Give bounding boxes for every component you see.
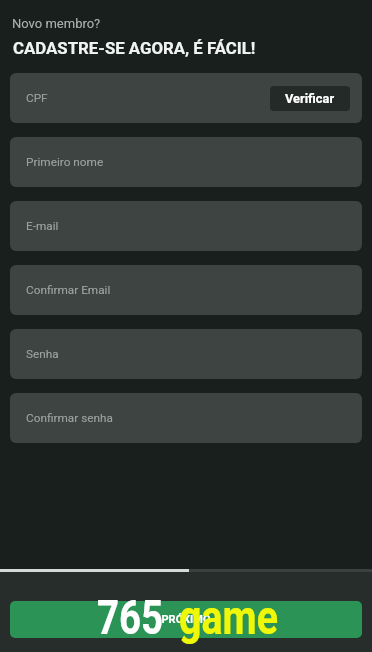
button[interactable]: Confirmar senha xyxy=(10,393,362,443)
staticText: E-mail xyxy=(26,219,59,233)
button[interactable]: Verificar xyxy=(270,86,350,111)
staticText: Confirmar Email xyxy=(26,283,111,297)
button[interactable]: E-mail xyxy=(10,201,362,251)
staticText: Senha xyxy=(26,347,59,361)
staticText: game xyxy=(179,589,278,645)
button[interactable]: Primeiro nome xyxy=(10,137,362,187)
button[interactable]: CPF xyxy=(10,73,362,123)
staticText: Verificar xyxy=(285,91,335,106)
button[interactable]: Confirmar Email xyxy=(10,265,362,315)
staticText: Novo membro? xyxy=(12,16,101,31)
staticText: CADASTRE-SE AGORA, É FÁCIL! xyxy=(13,38,256,58)
staticText: PRÓXIMO xyxy=(161,613,211,626)
button[interactable]: Senha xyxy=(10,329,362,379)
staticText: CPF xyxy=(26,91,48,105)
button[interactable]: PRÓXIMO xyxy=(10,601,362,638)
staticText: 765 xyxy=(97,589,163,645)
staticText: Confirmar senha xyxy=(26,411,113,425)
staticText: Primeiro nome xyxy=(26,155,104,169)
